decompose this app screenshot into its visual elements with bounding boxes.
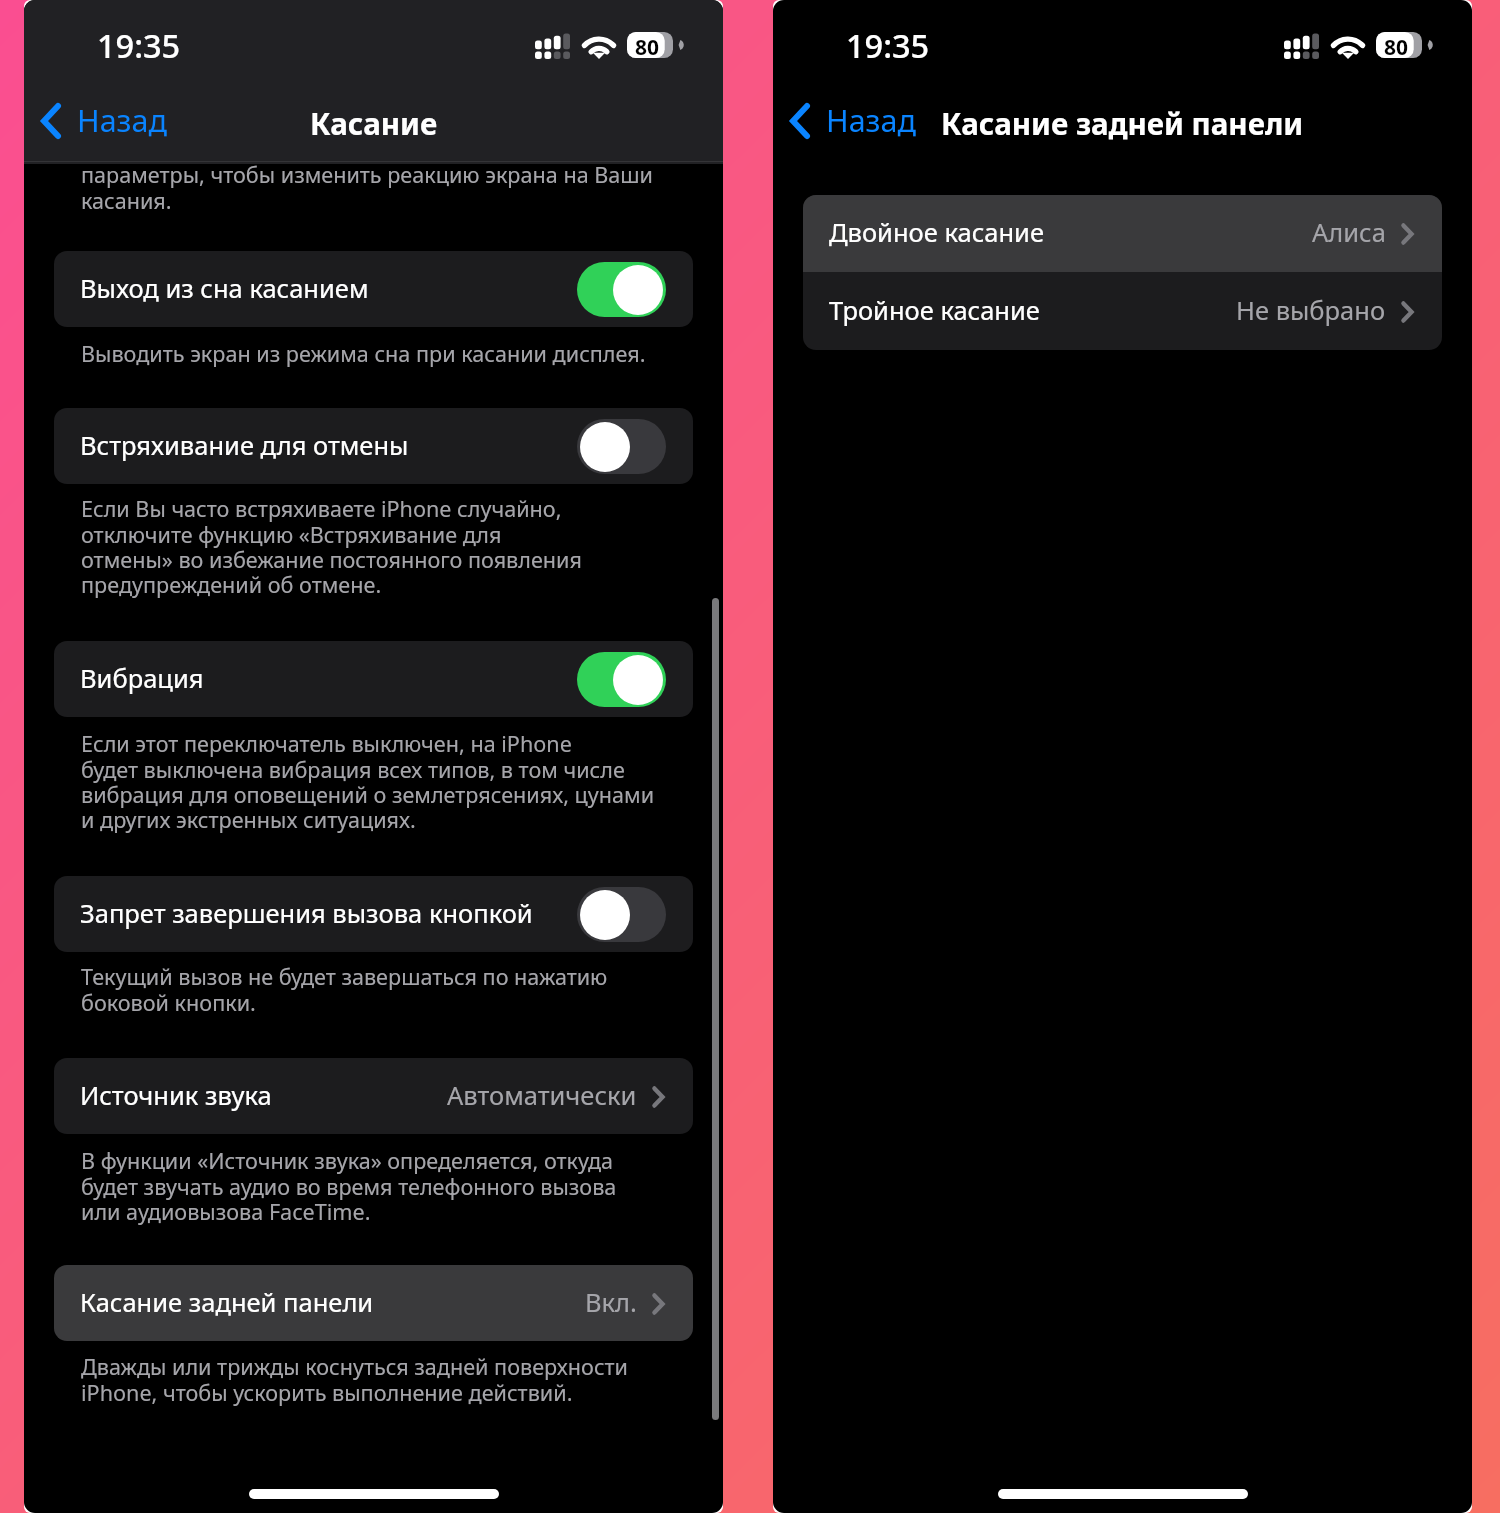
staticText: Назад <box>826 99 916 141</box>
button[interactable]: Назад <box>773 92 930 150</box>
staticText: Запрет завершения вызова кнопкой <box>80 896 533 931</box>
button[interactable]: Выключено <box>577 887 666 942</box>
staticText: Алиса <box>1312 215 1386 250</box>
button[interactable]: Запрет завершения вызова кнопкой <box>54 876 693 952</box>
staticText: Дважды или трижды коснуться задней повер… <box>81 1352 628 1407</box>
staticText: Вкл. <box>585 1285 637 1320</box>
button[interactable]: Включено <box>577 262 666 317</box>
staticText: 80 <box>1384 33 1409 62</box>
button[interactable]: Включено <box>577 652 666 707</box>
button[interactable]: Источник звука <box>54 1058 693 1134</box>
staticText: 19:35 <box>97 23 181 67</box>
staticText: Касание задней панели <box>941 103 1304 143</box>
staticText: Если этот переключатель выключен, на iPh… <box>81 729 655 834</box>
staticText: Вибрация <box>80 661 204 696</box>
staticText: Текущий вызов не будет завершаться по на… <box>81 962 608 1017</box>
staticText: Выход из сна касанием <box>80 271 369 306</box>
staticText: Тройное касание <box>829 293 1040 328</box>
staticText: Если Вы часто встряхиваете iPhone случай… <box>81 494 582 599</box>
staticText: 80 <box>635 33 660 62</box>
button[interactable]: Назад <box>24 92 181 150</box>
button[interactable]: Касание задней панели <box>54 1265 693 1341</box>
staticText: Встряхивание для отмены <box>80 428 409 463</box>
staticText: параметры, чтобы изменить реакцию экрана… <box>81 160 654 215</box>
button[interactable]: Выключено <box>577 419 666 474</box>
button[interactable]: Встряхивание для отмены <box>54 408 693 484</box>
staticText: 19:35 <box>846 23 930 67</box>
staticText: Двойное касание <box>829 215 1044 250</box>
staticText: В функции «Источник звука» определяется,… <box>81 1146 617 1226</box>
button[interactable]: Выход из сна касанием <box>54 251 693 327</box>
staticText: Источник звука <box>80 1078 272 1113</box>
button[interactable]: Вибрация <box>54 641 693 717</box>
staticText: Автоматически <box>447 1078 637 1113</box>
staticText: Назад <box>77 99 167 141</box>
button[interactable]: Двойное касание <box>803 195 1442 272</box>
staticText: Выводить экран из режима сна при касании… <box>81 339 646 368</box>
staticText: Касание <box>310 103 438 143</box>
staticText: Не выбрано <box>1236 293 1386 328</box>
button[interactable]: Тройное касание <box>803 272 1442 350</box>
staticText: Касание задней панели <box>80 1285 374 1320</box>
